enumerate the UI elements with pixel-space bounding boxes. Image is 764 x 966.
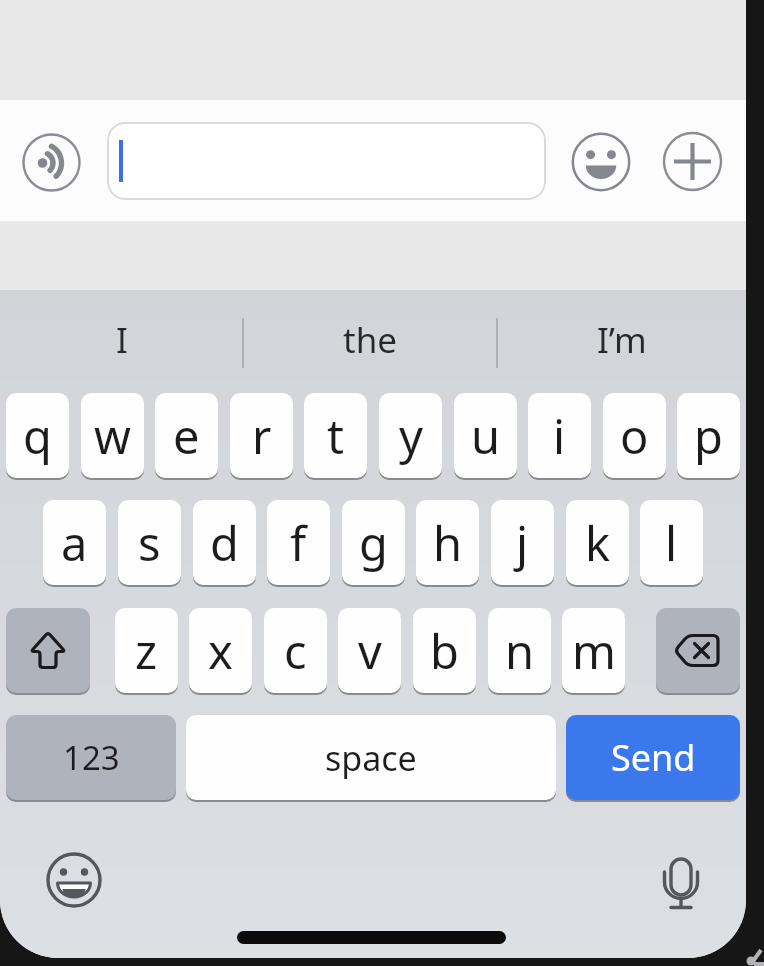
button[interactable] [572,133,630,191]
button[interactable] [656,608,740,693]
staticText: t [327,404,344,468]
staticText: c [284,619,307,683]
staticText: p [694,404,723,468]
button[interactable]: o [603,393,666,478]
staticText: o [620,404,649,468]
staticText: g [359,511,388,575]
staticText: d [210,511,239,575]
staticText: 123 [63,735,120,780]
button[interactable]: d [193,500,256,585]
staticText: space [325,735,417,781]
button[interactable]: z [115,608,178,693]
staticText: u [471,404,501,468]
button[interactable]: m [562,608,625,693]
button[interactable] [107,122,546,200]
button[interactable]: b [413,608,476,693]
staticText: n [505,619,535,683]
staticText: j [516,511,529,575]
staticText: f [290,511,307,575]
button[interactable]: n [488,608,551,693]
staticText: b [430,619,459,683]
button[interactable] [6,608,90,693]
button[interactable]: f [267,500,330,585]
button[interactable]: p [677,393,740,478]
button[interactable]: k [566,500,629,585]
staticText: Send [611,733,696,782]
staticText: x [208,619,233,683]
staticText: the [343,316,398,364]
staticText: r [252,404,272,468]
button[interactable]: j [491,500,554,585]
button[interactable] [652,854,710,912]
button[interactable]: r [230,393,293,478]
button[interactable]: I [0,290,243,390]
staticText: q [23,404,52,468]
staticText: v [358,619,382,683]
button[interactable]: u [454,393,517,478]
staticText: I [116,316,128,364]
button[interactable] [663,132,722,191]
button[interactable]: Send [566,715,740,800]
staticText: z [135,619,158,683]
button[interactable]: l [640,500,703,585]
button[interactable]: i [528,393,591,478]
staticText: e [173,404,200,468]
button[interactable]: I’m [497,290,746,390]
staticText: y [399,404,423,468]
staticText: m [572,619,616,683]
button[interactable]: x [189,608,252,693]
staticText: k [585,511,611,575]
button[interactable]: v [338,608,401,693]
button[interactable]: 123 [6,715,176,800]
button[interactable]: g [342,500,405,585]
button[interactable] [22,133,81,192]
staticText: a [61,511,88,575]
staticText: h [433,511,463,575]
staticText: w [94,404,131,468]
button[interactable]: w [81,393,144,478]
staticText: i [553,404,566,468]
button[interactable] [45,851,103,909]
button[interactable]: space [186,715,556,800]
staticText: l [665,511,678,575]
button[interactable]: c [264,608,327,693]
button[interactable]: e [155,393,218,478]
button[interactable]: q [6,393,69,478]
staticText: I’m [597,316,647,364]
button[interactable]: t [304,393,367,478]
button[interactable]: a [43,500,106,585]
button[interactable]: y [379,393,442,478]
button[interactable]: s [118,500,181,585]
staticText: s [138,511,161,575]
button[interactable]: h [416,500,479,585]
button[interactable]: the [243,290,497,390]
